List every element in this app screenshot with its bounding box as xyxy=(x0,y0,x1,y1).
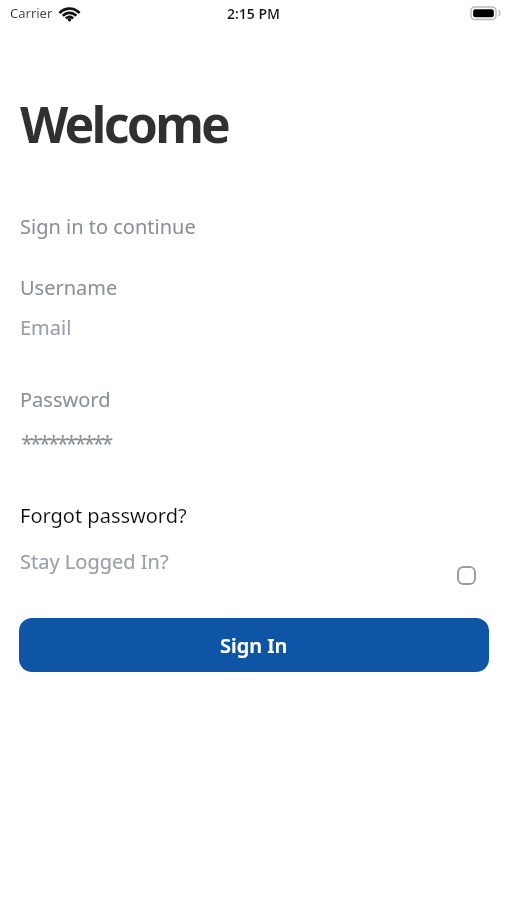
staticText: Sign In xyxy=(220,632,288,659)
staticText: Sign in to continue xyxy=(20,213,196,240)
staticText: Carrier xyxy=(10,4,53,22)
button[interactable]: Email xyxy=(20,314,480,341)
staticText: 2:15 PM xyxy=(0,4,507,23)
staticText: Welcome xyxy=(20,90,229,158)
staticText: Stay Logged In? xyxy=(20,548,169,575)
button[interactable] xyxy=(457,566,476,585)
staticText: Username xyxy=(20,274,118,301)
button[interactable]: Sign In xyxy=(19,618,489,672)
button[interactable]: ********** xyxy=(21,429,481,458)
staticText: Password xyxy=(20,386,111,413)
button[interactable]: Forgot password? xyxy=(20,502,187,529)
